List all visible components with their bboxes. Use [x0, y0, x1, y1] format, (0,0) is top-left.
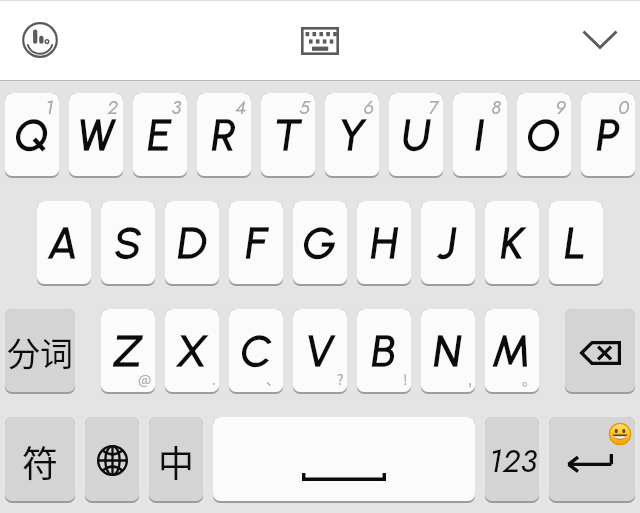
staticText: 5: [299, 94, 310, 121]
button[interactable]: I: [453, 93, 507, 176]
button[interactable]: Q: [5, 93, 59, 176]
button[interactable]: H: [357, 201, 411, 284]
button[interactable]: C: [229, 309, 283, 392]
staticText: 4: [235, 94, 246, 121]
staticText: A: [49, 217, 79, 269]
staticText: .: [212, 369, 216, 389]
staticText: 123: [488, 438, 537, 484]
staticText: I: [475, 109, 485, 161]
button[interactable]: Hide keyboard: [578, 20, 622, 60]
staticText: Z: [114, 325, 142, 377]
button[interactable]: Change language: [85, 417, 139, 501]
staticText: V: [306, 325, 334, 377]
staticText: 、: [266, 369, 280, 389]
button[interactable]: L: [549, 201, 603, 284]
button[interactable]: 分词: [5, 309, 75, 392]
staticText: F: [246, 217, 267, 269]
staticText: 2: [107, 94, 118, 121]
button[interactable]: N: [421, 309, 475, 392]
staticText: O: [527, 109, 561, 161]
staticText: M: [493, 325, 532, 377]
button[interactable]: T: [261, 93, 315, 176]
staticText: B: [372, 325, 396, 377]
staticText: J: [439, 217, 457, 269]
button[interactable]: Backspace: [565, 309, 635, 392]
staticText: ,: [468, 369, 472, 389]
button[interactable]: B: [357, 309, 411, 392]
staticText: S: [115, 217, 142, 269]
button[interactable]: K: [485, 201, 539, 284]
staticText: T: [274, 109, 302, 161]
staticText: 0: [618, 94, 630, 121]
button[interactable]: 123: [485, 417, 539, 501]
staticText: H: [371, 217, 398, 269]
button[interactable]: J: [421, 201, 475, 284]
staticText: 分词: [7, 328, 73, 376]
staticText: 符: [22, 435, 59, 487]
button[interactable]: W: [69, 93, 123, 176]
button[interactable]: E: [133, 93, 187, 176]
button[interactable]: U: [389, 93, 443, 176]
button[interactable]: M: [485, 309, 539, 392]
staticText: ?: [337, 369, 344, 389]
button[interactable]: X: [165, 309, 219, 392]
staticText: 9: [555, 94, 566, 121]
staticText: 7: [428, 94, 438, 121]
button[interactable]: 中: [149, 417, 203, 501]
button[interactable]: Input method settings: [18, 18, 62, 62]
button[interactable]: F: [229, 201, 283, 284]
button[interactable]: A: [37, 201, 91, 284]
staticText: X: [178, 325, 207, 377]
button[interactable]: Space: [213, 417, 475, 501]
button[interactable]: P: [581, 93, 635, 176]
staticText: 6: [363, 94, 374, 121]
button[interactable]: R: [197, 93, 251, 176]
button[interactable]: Enter: [549, 417, 635, 501]
staticText: Q: [15, 109, 49, 161]
staticText: G: [303, 217, 337, 269]
staticText: Y: [339, 109, 365, 161]
staticText: E: [148, 109, 172, 161]
button[interactable]: Y: [325, 93, 379, 176]
staticText: 中: [158, 435, 195, 487]
staticText: L: [565, 217, 587, 269]
button[interactable]: Z: [101, 309, 155, 392]
staticText: P: [597, 109, 620, 161]
button[interactable]: S: [101, 201, 155, 284]
staticText: K: [501, 217, 524, 269]
button[interactable]: V: [293, 309, 347, 392]
staticText: R: [212, 109, 236, 161]
button[interactable]: 符: [5, 417, 75, 501]
button[interactable]: Switch keyboard layout: [293, 20, 347, 62]
staticText: !: [403, 369, 408, 389]
button[interactable]: O: [517, 93, 571, 176]
staticText: C: [241, 325, 272, 377]
staticText: 1: [45, 94, 54, 121]
staticText: 。: [522, 369, 536, 389]
button[interactable]: D: [165, 201, 219, 284]
staticText: W: [78, 109, 115, 161]
staticText: 3: [171, 94, 182, 121]
staticText: D: [178, 217, 207, 269]
staticText: @: [138, 369, 152, 389]
button[interactable]: G: [293, 201, 347, 284]
staticText: N: [434, 325, 462, 377]
staticText: U: [402, 109, 431, 161]
staticText: 8: [491, 94, 502, 121]
